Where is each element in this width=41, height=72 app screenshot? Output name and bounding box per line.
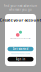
- staticText: Sign up to save your favourites: [10, 38, 31, 39]
- button[interactable]: Get started: [7, 47, 33, 51]
- button[interactable]: Sign in: [7, 57, 33, 61]
- staticText: Already have an account?: [11, 53, 30, 55]
- staticText: wherever you go: [9, 8, 32, 11]
- staticText: Find your next adventure: [3, 4, 37, 8]
- staticText: Sign in: [15, 57, 25, 61]
- staticText: Create your account: [0, 17, 41, 22]
- staticText: Get started: [12, 47, 28, 51]
